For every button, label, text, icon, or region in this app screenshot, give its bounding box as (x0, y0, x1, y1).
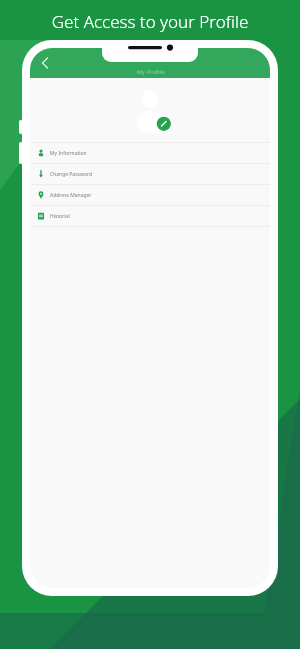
staticText: My Information (50, 150, 87, 157)
button[interactable]: Edit profile photo (127, 87, 173, 133)
button[interactable]: Change Password (30, 164, 270, 184)
staticText: Get Access to your Profile (0, 10, 300, 33)
button[interactable]: Back (34, 53, 54, 73)
staticText: My Profile (136, 68, 165, 76)
staticText: Historial (50, 213, 70, 220)
button[interactable]: Address Manager (30, 185, 270, 205)
button[interactable]: Historial (30, 206, 270, 226)
button[interactable]: My Information (30, 143, 270, 163)
staticText: Address Manager (50, 192, 92, 199)
staticText: Change Password (50, 171, 92, 178)
